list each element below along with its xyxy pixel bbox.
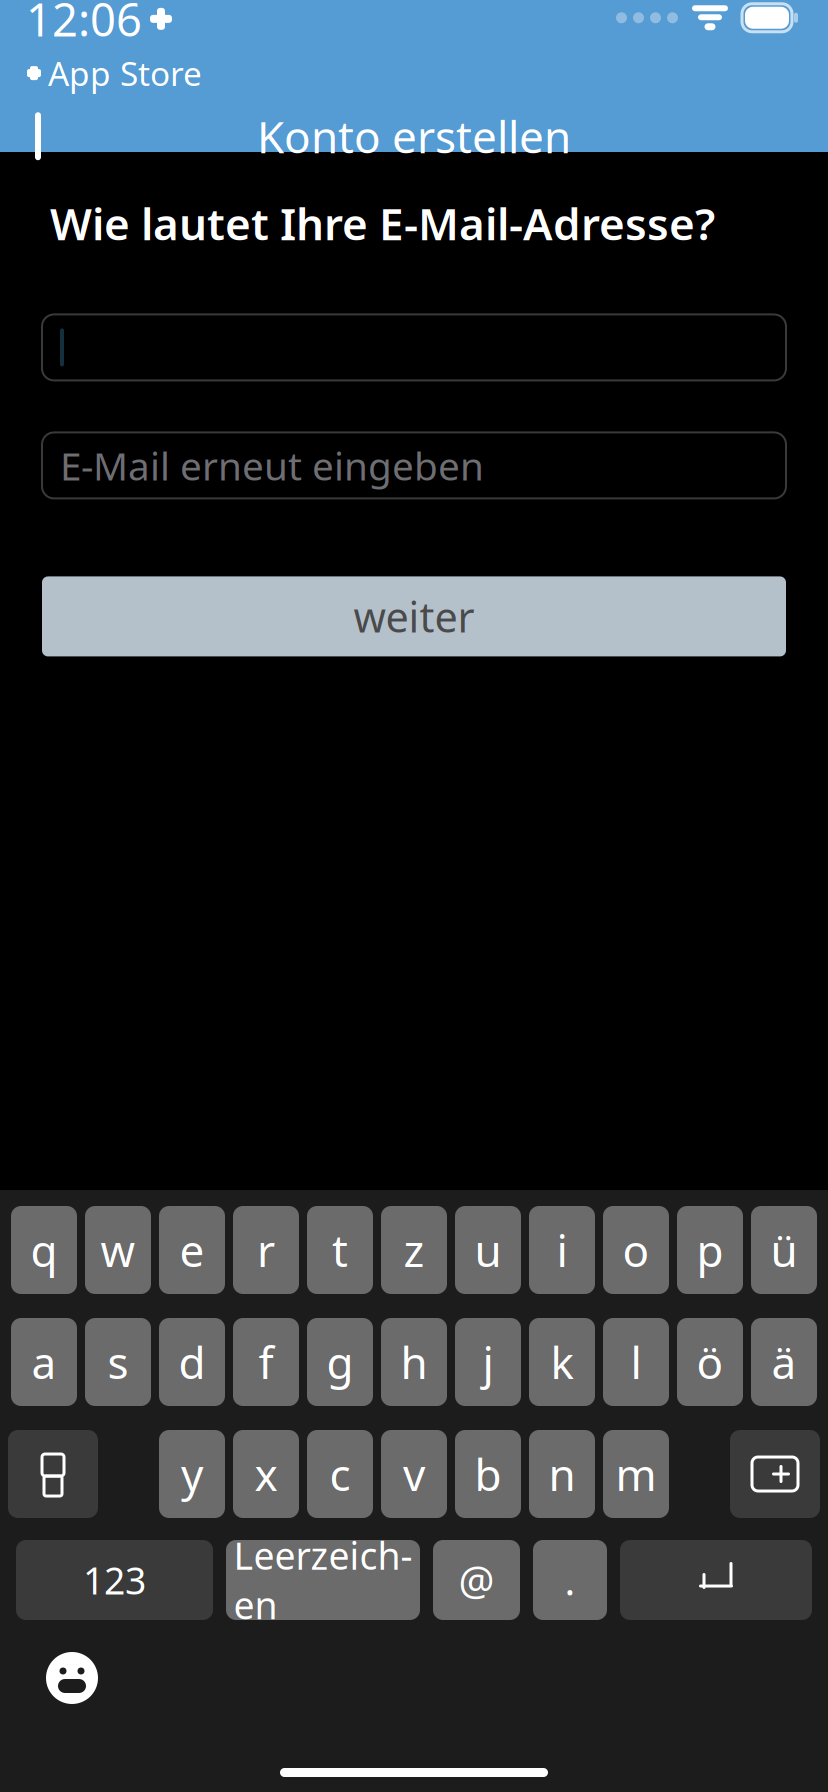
staticText: t	[332, 1221, 348, 1279]
button[interactable]: Emoji	[32, 1638, 112, 1718]
button[interactable]: e	[159, 1206, 225, 1294]
staticText: weiter	[353, 589, 474, 644]
button[interactable]: Eingabe	[620, 1540, 812, 1620]
staticText: @	[458, 1553, 494, 1606]
staticText: r	[257, 1221, 275, 1279]
staticText: App Store	[48, 51, 202, 95]
staticText: e	[179, 1221, 204, 1279]
button[interactable]: ö	[677, 1318, 743, 1406]
staticText: ü	[770, 1221, 797, 1279]
button[interactable]: 123	[16, 1540, 213, 1620]
button[interactable]: f	[233, 1318, 299, 1406]
staticText: ö	[696, 1333, 723, 1391]
staticText: u	[474, 1221, 501, 1279]
staticText: m	[615, 1445, 656, 1503]
button[interactable]: k	[529, 1318, 595, 1406]
staticText: i	[556, 1221, 567, 1279]
button[interactable]: weiter	[42, 576, 786, 656]
button[interactable]: u	[455, 1206, 521, 1294]
button[interactable]: v	[381, 1430, 447, 1518]
staticText: v	[403, 1445, 425, 1503]
staticText: a	[31, 1333, 56, 1391]
staticText: y	[181, 1445, 203, 1503]
staticText: s	[107, 1333, 128, 1391]
staticText: ä	[771, 1333, 796, 1391]
staticText: q	[30, 1221, 57, 1279]
button[interactable]: ü	[751, 1206, 817, 1294]
button[interactable]: q	[11, 1206, 77, 1294]
staticText: g	[326, 1333, 353, 1391]
staticText: 12:06	[26, 0, 142, 49]
button[interactable]: Zurück	[8, 101, 78, 171]
staticText: Konto erstellen	[257, 107, 571, 165]
staticText: c	[329, 1445, 350, 1503]
button[interactable]: y	[159, 1430, 225, 1518]
button[interactable]: r	[233, 1206, 299, 1294]
staticText: d	[178, 1333, 205, 1391]
staticText: Wie lautet Ihre E-Mail-Adresse?	[50, 194, 715, 252]
staticText: f	[258, 1333, 273, 1391]
staticText: Leerzeichen	[233, 1530, 412, 1630]
button[interactable]: t	[307, 1206, 373, 1294]
button[interactable]: l	[603, 1318, 669, 1406]
staticText: j	[482, 1333, 493, 1391]
button[interactable]: m	[603, 1430, 669, 1518]
staticText: n	[548, 1445, 575, 1503]
button[interactable]: j	[455, 1318, 521, 1406]
staticText: x	[254, 1445, 277, 1503]
staticText: o	[622, 1221, 649, 1279]
button[interactable]: z	[381, 1206, 447, 1294]
staticText: E-Mail erneut eingeben	[60, 440, 484, 491]
button[interactable]: n	[529, 1430, 595, 1518]
button[interactable]: w	[85, 1206, 151, 1294]
staticText: p	[696, 1221, 723, 1279]
button[interactable]: Löschen	[730, 1430, 820, 1518]
button[interactable]: g	[307, 1318, 373, 1406]
button[interactable]: c	[307, 1430, 373, 1518]
staticText: z	[403, 1221, 424, 1279]
staticText: b	[474, 1445, 501, 1503]
button[interactable]: d	[159, 1318, 225, 1406]
button[interactable]: App Store	[26, 51, 202, 95]
button[interactable]: a	[11, 1318, 77, 1406]
button[interactable]: p	[677, 1206, 743, 1294]
button[interactable]: b	[455, 1430, 521, 1518]
button[interactable]: @	[433, 1540, 520, 1620]
button[interactable]: Umschalten	[8, 1430, 98, 1518]
button[interactable]: i	[529, 1206, 595, 1294]
button[interactable]: h	[381, 1318, 447, 1406]
button[interactable]: x	[233, 1430, 299, 1518]
button[interactable]: s	[85, 1318, 151, 1406]
staticText: 123	[83, 1555, 146, 1605]
button[interactable]: Leerzeichen	[226, 1540, 420, 1620]
button[interactable]: ä	[751, 1318, 817, 1406]
button[interactable]: .	[533, 1540, 607, 1620]
staticText: l	[630, 1333, 641, 1391]
staticText: k	[550, 1333, 573, 1391]
button[interactable]: o	[603, 1206, 669, 1294]
staticText: .	[564, 1553, 575, 1606]
staticText: w	[100, 1221, 135, 1279]
staticText: h	[400, 1333, 427, 1391]
